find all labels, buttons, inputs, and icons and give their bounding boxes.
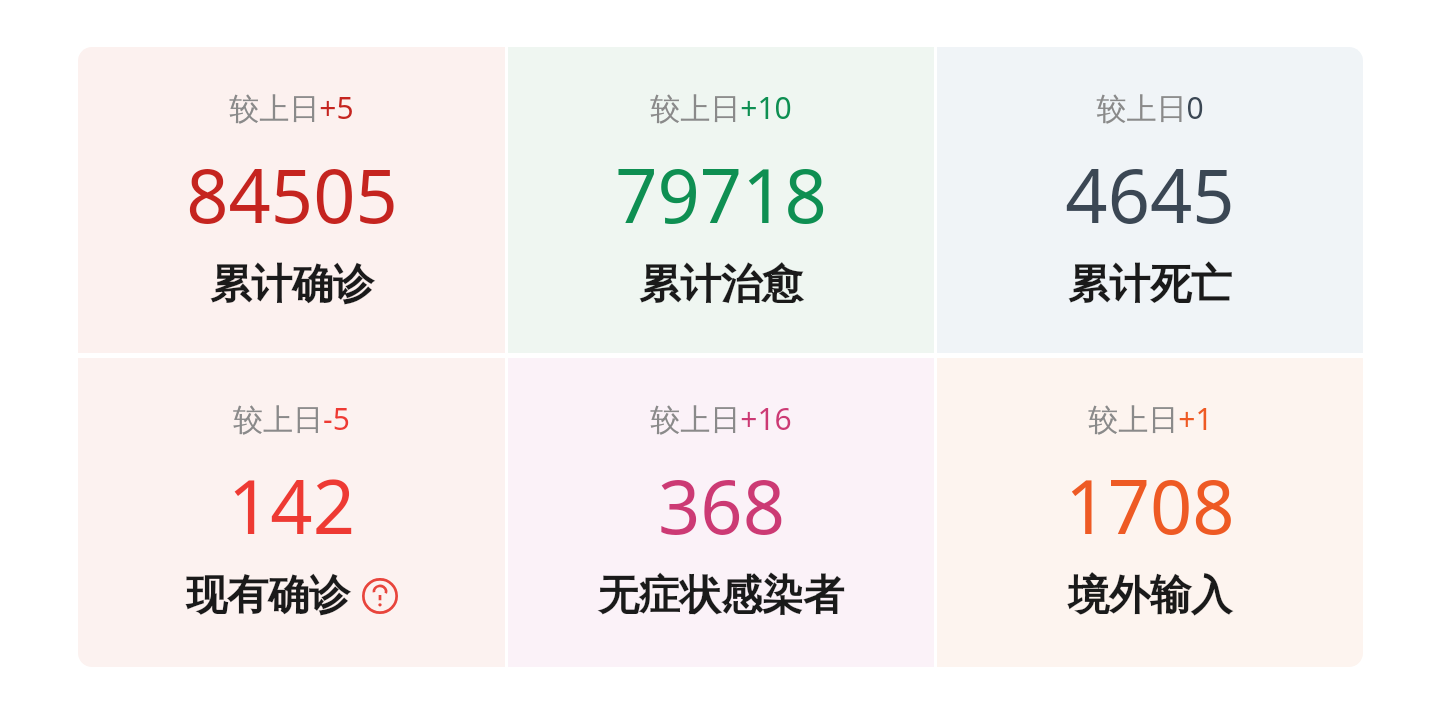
staticText: 现有确诊 <box>186 570 350 622</box>
staticText: 累计确诊 <box>210 259 374 311</box>
staticText: 较上日+1 <box>1088 398 1213 439</box>
button[interactable]: 较上日+10 <box>508 47 934 353</box>
button[interactable]: 帮助说明 <box>362 578 398 614</box>
staticText: 142 <box>228 455 355 556</box>
staticText: 较上日+10 <box>650 87 792 128</box>
button[interactable]: 较上日+1 <box>937 358 1363 667</box>
staticText: 累计治愈 <box>639 259 803 311</box>
staticText: 较上日0 <box>1096 87 1204 128</box>
staticText: 较上日+16 <box>650 398 792 439</box>
staticText: 84505 <box>186 144 398 245</box>
staticText: 1708 <box>1065 455 1235 556</box>
staticText: 境外输入 <box>1068 570 1232 622</box>
staticText: 4645 <box>1065 144 1235 245</box>
button[interactable]: 较上日+16 <box>508 358 934 667</box>
button[interactable]: 较上日0 <box>937 47 1363 353</box>
staticText: 79718 <box>615 144 827 245</box>
staticText: 368 <box>658 455 785 556</box>
button[interactable]: 较上日+5 <box>78 47 505 353</box>
staticText: 较上日-5 <box>233 398 350 439</box>
staticText: 累计死亡 <box>1068 259 1232 311</box>
button[interactable]: 较上日-5 <box>78 358 505 667</box>
staticText: 无症状感染者 <box>598 570 844 622</box>
staticText: 较上日+5 <box>229 87 354 128</box>
